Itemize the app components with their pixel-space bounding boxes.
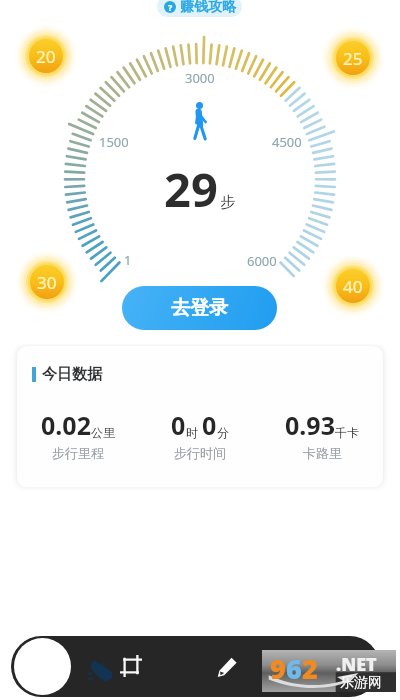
staticText: 6 (286, 650, 302, 687)
staticText: 公里 (91, 425, 115, 440)
staticText: 0.93 (285, 408, 335, 442)
button[interactable]: 奖励金币 40 (320, 253, 386, 319)
staticText: 分 (217, 425, 229, 440)
staticText: 30 (37, 271, 57, 294)
staticText: 4500 (272, 133, 302, 151)
staticText: 步行里程 (52, 445, 104, 461)
staticText: 去登录 (171, 296, 228, 320)
staticText: 0 (171, 408, 186, 442)
staticText: 1 (124, 251, 132, 269)
staticText: 0 (202, 408, 217, 442)
button[interactable]: 奖励金币 25 (320, 25, 386, 91)
staticText: 20 (36, 45, 56, 68)
staticText: .NET (336, 652, 377, 677)
button[interactable]: ? (157, 0, 242, 17)
button[interactable]: 今日数据 (17, 346, 383, 487)
staticText: 1500 (99, 133, 129, 151)
staticText: 25 (343, 47, 363, 70)
button[interactable]: 截图预览 (14, 638, 71, 695)
button[interactable]: 裁剪 (120, 655, 142, 677)
staticText: 2 (302, 650, 318, 687)
staticText: 步 (220, 193, 235, 212)
staticText: 赚钱攻略 (180, 0, 236, 16)
staticText: 时 (186, 425, 198, 440)
staticText: 3000 (185, 69, 215, 87)
staticText: 步行时间 (174, 445, 226, 461)
staticText: 29 (164, 157, 218, 221)
button[interactable]: 奖励金币 20 (13, 23, 79, 89)
staticText: 卡路里 (303, 445, 342, 461)
button[interactable]: 奖励金币 30 (14, 249, 80, 315)
staticText: 40 (343, 275, 363, 298)
staticText: 今日数据 (42, 365, 102, 384)
staticText: 9 (270, 650, 286, 687)
staticText: 乐游网 (340, 674, 382, 692)
staticText: ? (168, 1, 173, 13)
staticText: 0.02 (41, 408, 91, 442)
button[interactable]: 走走 (88, 659, 112, 682)
staticText: 千卡 (335, 425, 359, 440)
button[interactable]: 涂鸦 (215, 655, 238, 678)
button[interactable]: 去登录 (122, 286, 277, 330)
staticText: 6000 (247, 252, 277, 270)
